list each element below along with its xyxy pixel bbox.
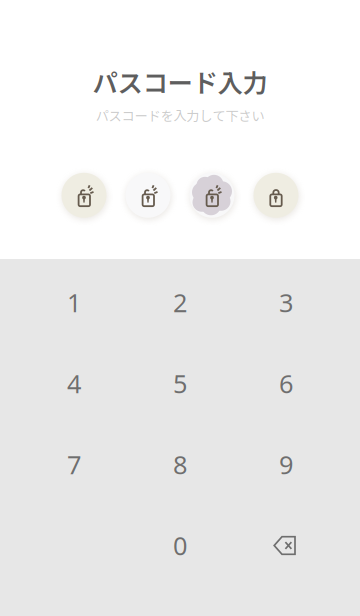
button[interactable]: 8 [127, 424, 233, 505]
staticText: 4 [67, 367, 81, 400]
staticText: 9 [279, 448, 293, 481]
staticText: パスコード入力 [92, 63, 267, 100]
button[interactable]: 3 [233, 262, 339, 343]
button[interactable]: 6 [233, 343, 339, 424]
staticText: 8 [173, 448, 187, 481]
button[interactable]: 0 [127, 505, 233, 586]
staticText: 7 [67, 448, 81, 481]
staticText: パスコードを入力して下さい [95, 106, 264, 125]
staticText: 3 [279, 286, 293, 319]
button[interactable]: Delete [233, 505, 339, 586]
staticText: 2 [173, 286, 187, 319]
button[interactable]: 9 [233, 424, 339, 505]
staticText: 1 [67, 286, 81, 319]
button[interactable]: 5 [127, 343, 233, 424]
button[interactable]: 7 [21, 424, 127, 505]
button[interactable]: 1 [21, 262, 127, 343]
button[interactable]: 2 [127, 262, 233, 343]
staticText: 0 [173, 529, 187, 562]
staticText: 6 [279, 367, 293, 400]
button[interactable]: 4 [21, 343, 127, 424]
staticText: 5 [173, 367, 187, 400]
